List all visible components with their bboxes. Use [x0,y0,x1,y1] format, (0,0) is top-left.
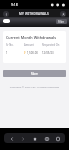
staticText: Filter [58,20,65,24]
button[interactable]: Logo [3,19,10,23]
button[interactable]: Back [3,11,9,17]
staticText: 9:18 [11,2,18,7]
staticText: Requested On [42,43,63,47]
button[interactable]: Filter [56,19,67,24]
staticText: Current Month Withdrawals [6,35,57,40]
button[interactable]: Menu [53,134,62,143]
button[interactable]: Home [30,134,39,143]
staticText: 1,500.00 [26,51,38,55]
staticText: 1 [6,51,24,55]
staticText: 12/05/23 [42,51,63,55]
button[interactable]: Forward [18,134,27,143]
staticText: Copyright © 2023 Abc. All Rights Reserve… [0,85,69,88]
button[interactable]: More [3,70,66,77]
staticText: Amount [24,43,42,47]
button[interactable]: Account [60,11,66,17]
staticText: ₹ [24,51,26,55]
button[interactable]: Tabs [42,134,51,143]
staticText: MY WITHDRAWALS [19,12,49,16]
button[interactable]: Back [7,134,16,143]
staticText: More [31,72,38,76]
staticText: Sr No. [6,43,24,47]
